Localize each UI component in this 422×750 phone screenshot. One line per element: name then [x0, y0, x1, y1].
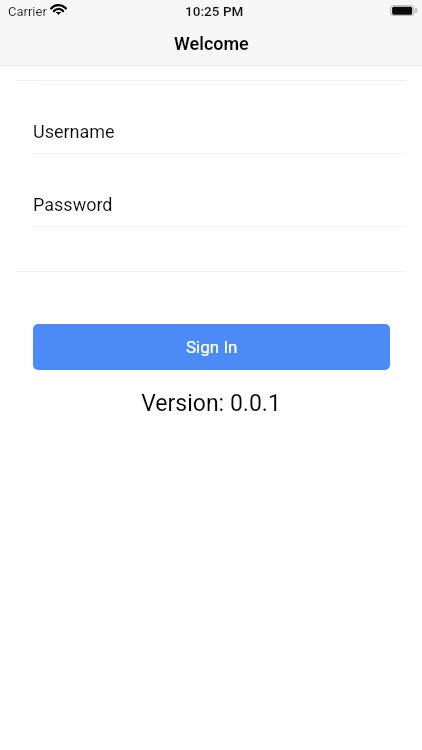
staticText: Welcome: [174, 33, 249, 51]
staticText: 10:25 PM: [185, 3, 244, 19]
other: Battery full: [390, 5, 418, 16]
staticText: Sign In: [186, 337, 238, 357]
button[interactable]: Password: [33, 194, 406, 226]
staticText: Password: [33, 194, 113, 215]
button[interactable]: Sign In: [33, 324, 390, 370]
staticText: Version: 0.0.1: [141, 390, 281, 417]
other: Wi-Fi signal: [51, 4, 66, 15]
staticText: Username: [33, 121, 115, 142]
button[interactable]: Username: [33, 121, 406, 153]
staticText: Carrier: [8, 4, 47, 19]
